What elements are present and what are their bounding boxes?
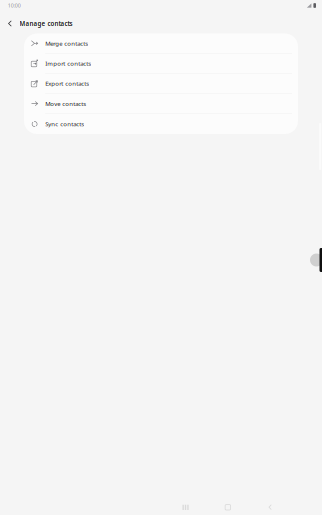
button[interactable]: Back: [0, 14, 20, 32]
staticText: Import contacts: [45, 59, 91, 67]
staticText: Move contacts: [45, 99, 86, 108]
staticText: Sync contacts: [45, 120, 84, 128]
staticText: Merge contacts: [45, 39, 88, 47]
button[interactable]: Sync contacts: [24, 114, 298, 134]
button[interactable]: Export contacts: [24, 74, 298, 94]
button[interactable]: Merge contacts: [24, 33, 298, 54]
staticText: Export contacts: [45, 79, 89, 88]
button[interactable]: Recent apps: [164, 486, 207, 510]
button[interactable]: Move contacts: [24, 94, 298, 114]
button[interactable]: Import contacts: [24, 54, 298, 74]
staticText: Manage contacts: [20, 19, 73, 28]
staticText: 10:00: [8, 2, 21, 9]
